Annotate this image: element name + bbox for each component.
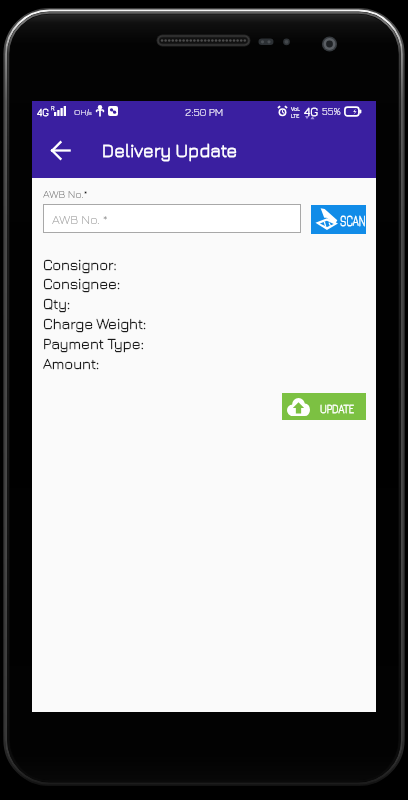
staticText: UPDATE: [320, 400, 355, 416]
button[interactable]: AWB No. *: [43, 204, 301, 233]
button[interactable]: SCAN: [311, 205, 366, 234]
button[interactable]: Back: [45, 135, 75, 165]
staticText: 4G: [304, 104, 319, 118]
staticText: 4G: [37, 106, 49, 118]
staticText: Delivery Update: [102, 140, 238, 161]
staticText: AWB No. *: [52, 211, 108, 226]
staticText: Consignor:: [43, 256, 117, 274]
staticText: LTE: [291, 113, 300, 120]
staticText: 2:50 PM: [185, 105, 224, 118]
staticText: s: [88, 108, 92, 116]
staticText: 55%: [322, 105, 341, 117]
staticText: Payment Type:: [43, 335, 144, 353]
staticText: Amount:: [43, 355, 100, 373]
staticText: Qty:: [43, 295, 71, 313]
staticText: Consignee:: [43, 275, 121, 293]
staticText: VoL: [291, 106, 300, 113]
staticText: Charge Weight:: [43, 315, 147, 333]
staticText: R: [51, 104, 55, 111]
staticText: OH/: [74, 106, 90, 117]
staticText: SCAN: [340, 212, 366, 229]
button[interactable]: UPDATE: [282, 393, 366, 420]
staticText: AWB No.*: [43, 187, 88, 200]
